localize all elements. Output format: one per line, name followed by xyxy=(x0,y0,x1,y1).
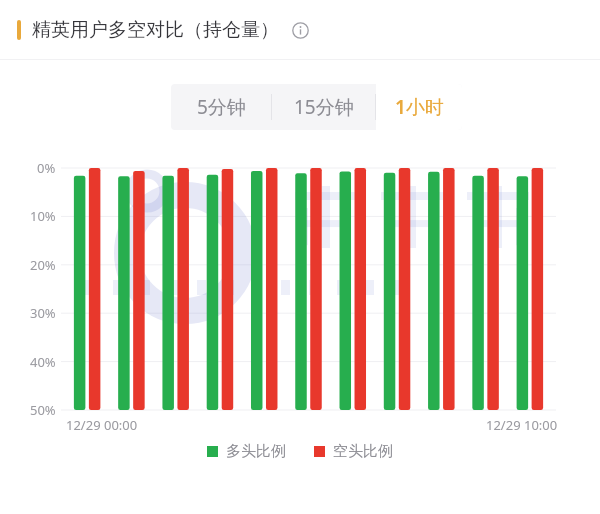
staticText: 5分钟 xyxy=(197,94,246,120)
staticText: 40% xyxy=(30,353,56,371)
staticText: 精英用户多空对比（持仓量） xyxy=(32,18,279,42)
staticText: 10% xyxy=(30,207,56,225)
button[interactable]: 5分钟 xyxy=(171,84,271,130)
staticText: 12/29 00:00 xyxy=(66,416,138,434)
staticText: 1小时 xyxy=(395,94,444,120)
staticText: 20% xyxy=(30,256,56,274)
button[interactable]: 多头比例 xyxy=(207,442,286,461)
button[interactable]: 1小时 xyxy=(376,84,462,130)
staticText: 12/29 10:00 xyxy=(486,416,558,434)
button[interactable]: 15分钟 xyxy=(272,84,375,130)
button[interactable]: 空头比例 xyxy=(314,442,393,461)
staticText: 50% xyxy=(30,401,56,419)
staticText: 15分钟 xyxy=(294,94,354,120)
staticText: 空头比例 xyxy=(333,442,393,461)
staticText: 多头比例 xyxy=(226,442,286,461)
button[interactable]: Info xyxy=(288,18,312,42)
staticText: 0% xyxy=(37,159,56,177)
staticText: 30% xyxy=(30,304,56,322)
